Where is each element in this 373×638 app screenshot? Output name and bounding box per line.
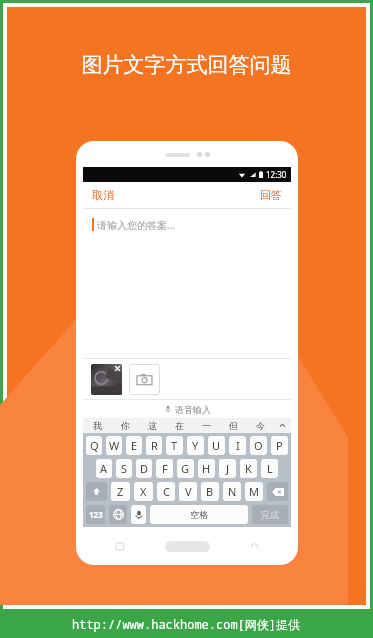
button[interactable]: M (245, 482, 263, 501)
staticText: W (109, 438, 120, 453)
button[interactable]: W (106, 436, 122, 455)
staticText: http://www.hackhome.com[网侠]提供 (72, 616, 301, 632)
button[interactable]: B (201, 482, 219, 501)
button[interactable]: L (261, 459, 278, 478)
staticText: 一 (202, 420, 211, 431)
staticText: I (236, 438, 240, 453)
button[interactable]: 取消 (90, 186, 116, 204)
button[interactable]: G (177, 459, 194, 478)
staticText: 取消 (92, 188, 114, 202)
button[interactable]: R (146, 436, 162, 455)
button[interactable]: Back (243, 535, 265, 557)
staticText: D (140, 461, 149, 476)
button[interactable]: 今 (247, 418, 274, 433)
button[interactable]: X (134, 482, 153, 501)
staticText: T (171, 438, 178, 453)
button[interactable]: 但 (220, 418, 247, 433)
button[interactable]: Backspace (267, 482, 288, 501)
staticText: 完成 (261, 509, 279, 520)
button[interactable]: O (250, 436, 267, 455)
button[interactable]: C (157, 482, 175, 501)
button[interactable]: 回答 (258, 186, 284, 204)
button[interactable]: 这 (139, 418, 166, 433)
staticText: L (267, 461, 273, 476)
button[interactable]: F (156, 459, 173, 478)
button[interactable]: A (96, 459, 112, 478)
button[interactable]: Q (86, 436, 102, 455)
button[interactable]: 一 (193, 418, 220, 433)
staticText: 但 (229, 420, 238, 431)
button[interactable]: J (219, 459, 236, 478)
staticText: 语音输入 (175, 404, 211, 415)
button[interactable]: Take photo (129, 364, 160, 395)
staticText: M (249, 484, 259, 499)
staticText: R (151, 438, 158, 453)
staticText: 我 (93, 420, 102, 431)
staticText: H (202, 461, 211, 476)
button[interactable]: V (179, 482, 197, 501)
staticText: O (254, 438, 263, 453)
other: Remove photo (113, 364, 122, 373)
button[interactable]: I (229, 436, 246, 455)
staticText: A (100, 461, 108, 476)
button[interactable]: Change language (109, 505, 127, 524)
staticText: C (163, 484, 170, 499)
button[interactable]: Voice input (131, 505, 146, 524)
button[interactable]: 空格 (150, 505, 248, 524)
button[interactable]: S (116, 459, 132, 478)
staticText: S (121, 461, 128, 476)
staticText: E (131, 438, 138, 453)
button[interactable]: Home (165, 541, 210, 552)
button[interactable]: Remove photo (91, 364, 122, 395)
staticText: N (228, 484, 237, 499)
staticText: X (140, 484, 147, 499)
button[interactable]: Numbers (86, 505, 105, 524)
staticText: U (212, 438, 221, 453)
staticText: 12:30 (266, 169, 287, 180)
staticText: P (276, 438, 283, 453)
staticText: F (162, 461, 168, 476)
staticText: 今 (256, 420, 265, 431)
staticText: K (245, 461, 252, 476)
button[interactable]: 语音输入 (83, 400, 291, 418)
staticText: 在 (175, 420, 184, 431)
staticText: V (185, 484, 192, 499)
button[interactable]: 完成 (252, 505, 288, 524)
button[interactable]: Y (187, 436, 204, 455)
staticText: G (181, 461, 190, 476)
button[interactable]: H (198, 459, 215, 478)
staticText: 空格 (190, 509, 208, 520)
button[interactable]: Shift (86, 482, 107, 501)
staticText: B (206, 484, 214, 499)
staticText: 123 (89, 509, 103, 520)
staticText: Y (192, 438, 199, 453)
button[interactable]: N (223, 482, 241, 501)
staticText: 你 (121, 420, 130, 431)
button[interactable]: Recents (109, 535, 131, 557)
button[interactable]: T (166, 436, 183, 455)
staticText: J (226, 461, 230, 476)
staticText: 回答 (260, 188, 282, 202)
button[interactable]: 你 (111, 418, 139, 433)
button[interactable]: K (240, 459, 257, 478)
button[interactable]: 我 (83, 418, 111, 433)
button[interactable]: U (208, 436, 225, 455)
staticText: Q (90, 438, 99, 453)
button[interactable]: Z (111, 482, 130, 501)
button[interactable]: E (126, 436, 142, 455)
button[interactable]: P (271, 436, 288, 455)
button[interactable]: More suggestions (274, 418, 291, 433)
staticText: 这 (148, 420, 157, 431)
button[interactable]: 在 (166, 418, 193, 433)
staticText: 图片文字方式回答问题 (7, 52, 366, 78)
button[interactable]: D (136, 459, 152, 478)
staticText: 请输入您的答案... (97, 218, 176, 232)
staticText: Z (117, 484, 124, 499)
